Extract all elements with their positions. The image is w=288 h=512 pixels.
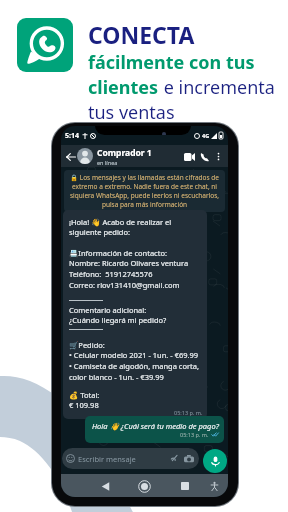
staticText: clientes bbox=[88, 75, 159, 100]
staticText: 💰 Total: € 109.98 bbox=[69, 390, 100, 411]
button[interactable]: More options bbox=[212, 150, 224, 162]
staticText: 4G bbox=[202, 132, 210, 139]
button[interactable]: Accessibility bbox=[206, 478, 222, 494]
staticText: Hola 👋 ¿Cuál será tu medio de pago? bbox=[92, 421, 219, 431]
other: Camera bbox=[184, 455, 194, 463]
button[interactable]: Voice call bbox=[197, 149, 212, 164]
staticText: CONECTA bbox=[88, 19, 195, 50]
staticText: Comprador 1 bbox=[97, 147, 152, 159]
button[interactable]: Back bbox=[64, 150, 77, 163]
staticText: ¡Hola! 👋 Acabo de realizar el siguiente … bbox=[69, 217, 203, 238]
staticText: en línea bbox=[97, 159, 118, 166]
other: Attach bbox=[170, 454, 179, 463]
button[interactable]: Recents bbox=[177, 478, 193, 494]
button[interactable]: Voice message bbox=[203, 449, 227, 473]
staticText: Escribir mensaje bbox=[78, 454, 136, 464]
staticText: 🛒Pedido: • Celular modelo 2021 - 1un. - … bbox=[69, 340, 203, 383]
staticText: e incrementa bbox=[159, 75, 275, 100]
button[interactable]: 🔒 Los mensajes y las llamadas están cifr… bbox=[65, 173, 224, 209]
staticText: tus ventas bbox=[88, 100, 175, 125]
button[interactable]: WhatsApp bbox=[17, 18, 73, 72]
staticText: fácilmente con tus bbox=[88, 50, 255, 75]
staticText: 5:14 bbox=[65, 131, 79, 141]
staticText: Comentario adicional: ¿Cuándo llegará mi… bbox=[69, 305, 167, 326]
button[interactable]: Back bbox=[97, 478, 113, 494]
staticText: 05:13 p. m. bbox=[174, 409, 203, 416]
button[interactable]: Escribir mensaje bbox=[66, 448, 194, 469]
staticText: 05:13 p. m. bbox=[180, 431, 209, 438]
button[interactable]: Video call bbox=[182, 149, 197, 164]
staticText: 📇Información de contacto: Nombre: Ricard… bbox=[69, 248, 189, 291]
staticText: 🔒 Los mensajes y las llamadas están cifr… bbox=[65, 173, 224, 209]
button[interactable]: Home bbox=[136, 478, 152, 494]
